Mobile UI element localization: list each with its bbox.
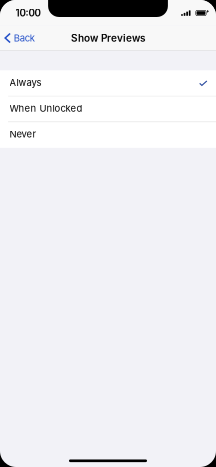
staticText: Back — [14, 32, 35, 44]
staticText: Never — [9, 128, 36, 140]
button[interactable]: When Unlocked — [0, 96, 216, 122]
staticText: 10:00 — [16, 7, 41, 19]
button[interactable]: Never — [0, 122, 216, 147]
staticText: Show Previews — [71, 32, 145, 44]
button[interactable]: Back — [0, 25, 41, 51]
staticText: Always — [9, 77, 41, 88]
staticText: When Unlocked — [9, 102, 82, 114]
button[interactable]: Always — [0, 71, 216, 96]
